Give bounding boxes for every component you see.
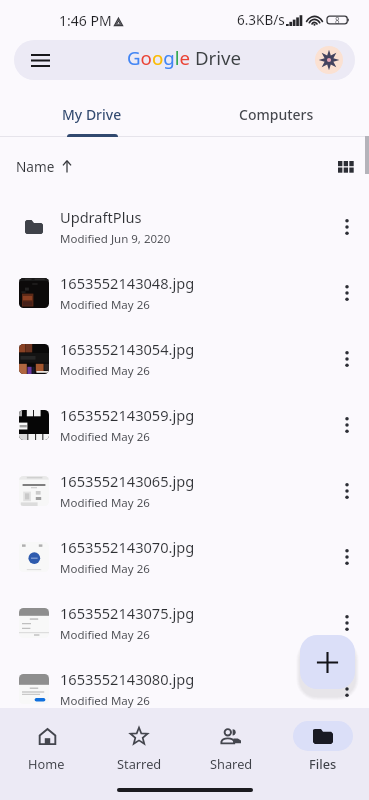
staticText: Google Drive <box>127 45 242 70</box>
staticText: Modified May 26 <box>60 429 150 445</box>
staticText: 1653552143054.jpg <box>60 339 195 359</box>
button[interactable]: 1653552143054.jpg <box>0 326 369 392</box>
button[interactable]: 1653552143059.jpg <box>0 392 369 458</box>
button[interactable]: Account <box>315 46 343 74</box>
button[interactable]: Open navigation menu <box>14 40 355 80</box>
staticText: Computers <box>239 105 314 124</box>
button[interactable]: Create new file <box>300 635 355 689</box>
staticText: 1653552143080.jpg <box>60 669 195 689</box>
staticText: Home <box>28 755 65 772</box>
button[interactable]: More options <box>325 458 369 524</box>
button[interactable]: More options <box>325 194 369 260</box>
button[interactable]: More options <box>325 392 369 458</box>
staticText: Modified May 26 <box>60 693 150 709</box>
staticText: Modified May 26 <box>60 297 150 313</box>
button[interactable]: More options <box>325 656 369 722</box>
staticText: My Drive <box>62 105 122 124</box>
staticText: 1653552143048.jpg <box>60 273 195 293</box>
staticText: Modified May 26 <box>60 561 150 577</box>
staticText: 6.3KB/s <box>237 11 285 29</box>
staticText: Modified May 26 <box>60 627 150 643</box>
staticText: Modified Jun 9, 2020 <box>60 231 171 247</box>
button[interactable]: 1653552143065.jpg <box>0 458 369 524</box>
button[interactable]: More options <box>325 260 369 326</box>
staticText: Name <box>16 157 55 176</box>
staticText: 1:46 PM <box>59 11 112 30</box>
staticText: Shared <box>210 755 253 772</box>
button[interactable]: Switch to grid view <box>328 149 364 185</box>
button[interactable]: Files <box>277 708 369 772</box>
button[interactable]: Home <box>0 708 93 772</box>
button[interactable]: More options <box>325 590 369 656</box>
button[interactable]: 1653552143075.jpg <box>0 590 369 656</box>
staticText: Modified May 26 <box>60 363 150 379</box>
staticText: UpdraftPlus <box>60 207 142 227</box>
other: Open navigation menu <box>14 40 66 80</box>
staticText: 8 <box>335 15 340 26</box>
staticText: 1653552143059.jpg <box>60 405 195 425</box>
staticText: 1653552143070.jpg <box>60 537 195 557</box>
button[interactable]: Name <box>16 151 72 182</box>
staticText: Modified May 26 <box>60 495 150 511</box>
staticText: 1653552143075.jpg <box>60 603 195 623</box>
button[interactable]: 1653552143070.jpg <box>0 524 369 590</box>
button[interactable]: More options <box>325 326 369 392</box>
button[interactable]: My Drive <box>0 92 184 137</box>
button[interactable]: 1653552143080.jpg <box>0 656 369 722</box>
button[interactable]: Starred <box>93 708 185 772</box>
button[interactable]: More options <box>325 524 369 590</box>
button[interactable]: UpdraftPlus <box>0 194 369 260</box>
staticText: Files <box>309 755 337 772</box>
staticText: Starred <box>117 755 162 772</box>
button[interactable]: Shared <box>185 708 277 772</box>
staticText: 1653552143065.jpg <box>60 471 195 491</box>
button[interactable]: Computers <box>184 92 369 137</box>
button[interactable]: 1653552143048.jpg <box>0 260 369 326</box>
